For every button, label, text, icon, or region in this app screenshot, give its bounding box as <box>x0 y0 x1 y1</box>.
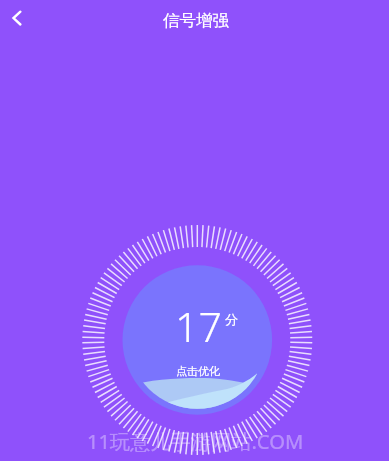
staticText: 17 <box>175 298 222 354</box>
staticText: 11玩意儿手游网站.COM <box>87 427 304 455</box>
button[interactable]: 17 <box>124 267 270 413</box>
button[interactable]: Back <box>0 0 38 40</box>
staticText: 分 <box>225 311 238 327</box>
staticText: 点击优化 <box>176 364 220 378</box>
staticText: 信号增强 <box>163 10 229 31</box>
